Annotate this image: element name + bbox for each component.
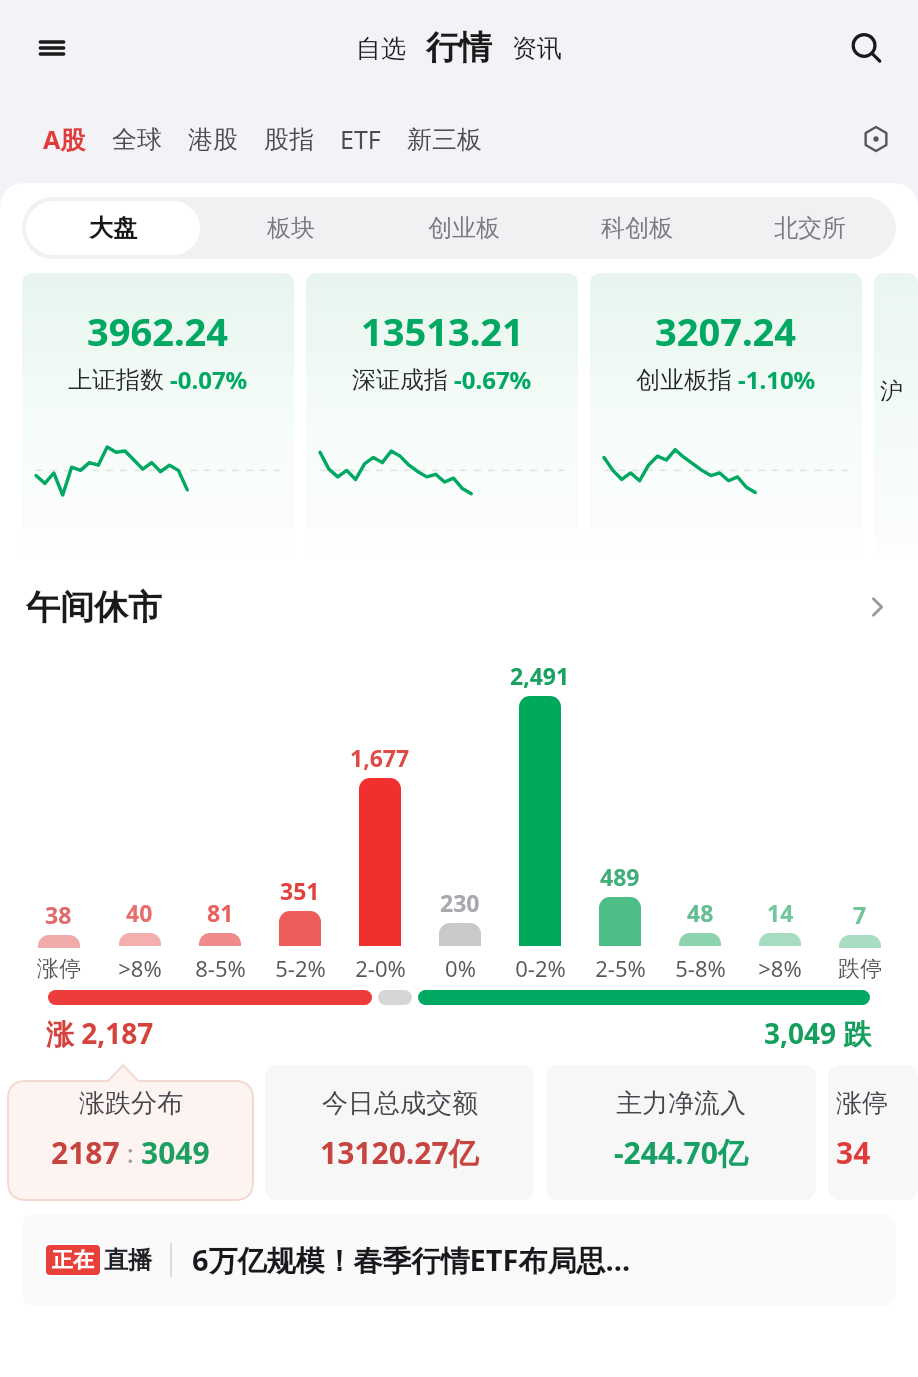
button[interactable]: 38: [18, 899, 99, 983]
button[interactable]: A股: [30, 116, 99, 162]
staticText: 3962.24: [87, 305, 229, 357]
button[interactable]: 489: [580, 861, 660, 983]
staticText: 230: [440, 887, 480, 918]
staticText: 351: [280, 875, 320, 906]
staticText: 大盘: [89, 213, 137, 243]
button[interactable]: 正在: [22, 1214, 896, 1306]
button[interactable]: 港股: [175, 118, 251, 161]
staticText: 全球: [112, 124, 162, 155]
staticText: 午间休市: [26, 586, 162, 629]
staticText: 81: [207, 897, 234, 928]
staticText: -244.70亿: [614, 1132, 748, 1173]
staticText: 3,049 跌: [764, 1014, 872, 1052]
staticText: 上证指数: [68, 365, 164, 395]
button[interactable]: 2,491: [500, 660, 580, 983]
staticText: 主力净流入: [616, 1087, 746, 1120]
button[interactable]: 创业板: [381, 201, 546, 255]
staticText: 2-5%: [595, 953, 646, 983]
button[interactable]: 今日总成交额: [265, 1065, 534, 1200]
staticText: 涨停: [836, 1087, 888, 1120]
staticText: 港股: [188, 124, 238, 155]
staticText: 34: [836, 1132, 871, 1173]
staticText: 正在: [52, 1247, 94, 1273]
button[interactable]: 资讯: [502, 33, 572, 64]
staticText: 行情: [426, 27, 492, 69]
staticText: >8%: [118, 953, 162, 983]
staticText: 直播: [104, 1245, 152, 1275]
staticText: >8%: [758, 953, 802, 983]
staticText: 2,491: [510, 660, 570, 691]
staticText: 创业板指: [636, 365, 732, 395]
staticText: 涨 2,187: [46, 1014, 154, 1052]
button[interactable]: 351: [260, 875, 340, 983]
staticText: 新三板: [407, 124, 482, 155]
staticText: 自选: [356, 33, 406, 64]
staticText: 13513.21: [361, 305, 524, 357]
staticText: 1,677: [350, 742, 410, 773]
button[interactable]: 81: [180, 897, 260, 983]
staticText: 股指: [264, 124, 314, 155]
staticText: 创业板: [428, 213, 500, 243]
button[interactable]: 股指: [251, 118, 327, 161]
staticText: 5-2%: [275, 953, 326, 983]
button[interactable]: 大盘: [26, 201, 200, 255]
staticText: 跌停: [838, 955, 882, 983]
staticText: 深证成指: [352, 365, 448, 395]
button[interactable]: Menu: [30, 26, 74, 70]
button[interactable]: 新三板: [394, 118, 495, 161]
staticText: 北交所: [774, 213, 846, 243]
button[interactable]: 涨跌分布: [8, 1065, 253, 1200]
staticText: 8-5%: [195, 953, 246, 983]
staticText: 2-0%: [355, 953, 406, 983]
staticText: 489: [600, 861, 640, 892]
button[interactable]: 3207.24: [590, 273, 862, 558]
staticText: 沪: [880, 377, 903, 406]
button[interactable]: 40: [99, 897, 180, 983]
button[interactable]: 1,677: [340, 742, 420, 983]
staticText: 6万亿规模！春季行情ETF布局思…: [192, 1240, 631, 1280]
button[interactable]: 主力净流入: [546, 1065, 816, 1200]
staticText: 40: [126, 897, 153, 928]
staticText: -0.07%: [170, 363, 248, 396]
staticText: -1.10%: [738, 363, 816, 396]
staticText: 涨停: [37, 955, 81, 983]
staticText: 13120.27亿: [320, 1132, 479, 1173]
staticText: 0-2%: [515, 953, 566, 983]
button[interactable]: 自选: [346, 33, 416, 64]
staticText: 今日总成交额: [322, 1087, 478, 1120]
staticText: 48: [687, 897, 714, 928]
button[interactable]: 7: [820, 899, 900, 983]
button[interactable]: 板块: [208, 201, 373, 255]
staticText: 5-8%: [675, 953, 726, 983]
button[interactable]: 230: [420, 887, 500, 983]
button[interactable]: 13513.21: [306, 273, 578, 558]
button[interactable]: 行情: [416, 27, 502, 69]
staticText: 14: [767, 897, 794, 928]
staticText: -0.67%: [454, 363, 532, 396]
staticText: 板块: [267, 213, 315, 243]
staticText: 3049: [141, 1132, 210, 1173]
button[interactable]: 北交所: [727, 201, 892, 255]
staticText: 7: [853, 899, 867, 930]
staticText: A股: [43, 122, 86, 156]
staticText: 0%: [445, 953, 476, 983]
button[interactable]: 沪: [874, 273, 918, 558]
button[interactable]: 14: [740, 897, 820, 983]
button[interactable]: 涨停: [828, 1065, 918, 1200]
staticText: ETF: [340, 122, 381, 156]
staticText: 2187: [51, 1132, 120, 1173]
staticText: 3207.24: [655, 305, 797, 357]
button[interactable]: 48: [660, 897, 740, 983]
staticText: 科创板: [601, 213, 673, 243]
button[interactable]: 全球: [99, 118, 175, 161]
button[interactable]: 3962.24: [22, 273, 294, 558]
button[interactable]: 科创板: [554, 201, 719, 255]
staticText: 资讯: [512, 33, 562, 64]
staticText: :: [120, 1135, 141, 1170]
staticText: 38: [45, 899, 72, 930]
button[interactable]: Customize tabs: [856, 119, 896, 159]
button[interactable]: ETF: [327, 116, 394, 162]
staticText: 涨跌分布: [79, 1087, 183, 1120]
button[interactable]: 午间休市: [0, 576, 918, 638]
button[interactable]: Search: [842, 24, 890, 72]
